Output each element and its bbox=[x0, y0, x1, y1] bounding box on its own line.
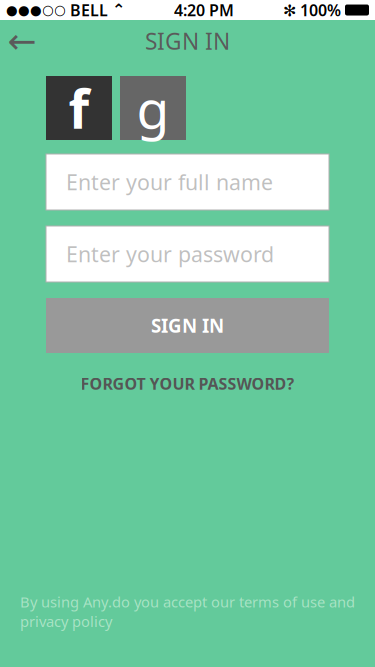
staticText: g bbox=[136, 73, 169, 143]
staticText: Enter your password bbox=[66, 240, 274, 268]
staticText: ⌃ bbox=[112, 1, 125, 19]
button[interactable]: Sign in with Google bbox=[120, 76, 186, 140]
staticText: ✻ 100% bbox=[283, 0, 341, 21]
staticText: SIGN IN bbox=[145, 26, 230, 56]
button[interactable]: FORGOT YOUR PASSWORD? bbox=[46, 365, 329, 402]
staticText: f bbox=[68, 73, 89, 143]
button[interactable]: SIGN IN bbox=[46, 298, 329, 353]
button[interactable]: Sign in with Facebook bbox=[46, 76, 112, 140]
staticText: ← bbox=[7, 21, 36, 61]
staticText: Enter your full name bbox=[66, 168, 273, 196]
staticText: FORGOT YOUR PASSWORD? bbox=[80, 373, 294, 394]
staticText: SIGN IN bbox=[151, 313, 224, 338]
staticText: 4:20 PM bbox=[174, 0, 234, 21]
button[interactable]: Enter your full name bbox=[46, 154, 329, 210]
staticText: BELL bbox=[66, 0, 112, 21]
button[interactable]: Enter your password bbox=[46, 226, 329, 282]
staticText: By using Any.do you accept our terms of … bbox=[20, 592, 355, 631]
staticText: ●●●○○ bbox=[6, 2, 66, 17]
button[interactable]: Back bbox=[0, 20, 44, 62]
